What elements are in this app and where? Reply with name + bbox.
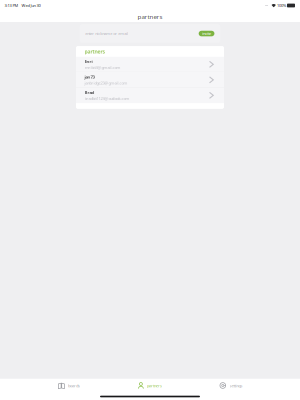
staticText: jan73: [85, 74, 95, 80]
staticText: settings: [229, 383, 242, 388]
staticText: janbridge23@gmail.com: [85, 80, 128, 86]
staticText: Enri: [85, 58, 93, 64]
staticText: bradbit1123@outlook.com: [85, 96, 130, 101]
staticText: partners: [147, 383, 162, 388]
staticText: partners: [85, 48, 105, 55]
button[interactable]: Brad: [76, 88, 224, 103]
staticText: 3:13 PM Wed Jun 30: [5, 3, 41, 8]
staticText: Brad: [85, 89, 95, 95]
staticText: 100%: [276, 3, 287, 8]
button[interactable]: Enri: [76, 57, 224, 72]
staticText: boards: [68, 383, 80, 388]
staticText: partners: [137, 12, 162, 21]
button[interactable]: invite: [199, 31, 214, 36]
staticText: invite: [202, 31, 211, 36]
button[interactable]: boards: [28, 380, 109, 392]
staticText: enribit3@gmail.com: [85, 65, 121, 70]
staticText: enter nickname or email: [85, 31, 128, 36]
button[interactable]: jan73: [76, 72, 224, 88]
button[interactable]: settings: [190, 380, 271, 392]
button[interactable]: partners: [109, 380, 190, 392]
